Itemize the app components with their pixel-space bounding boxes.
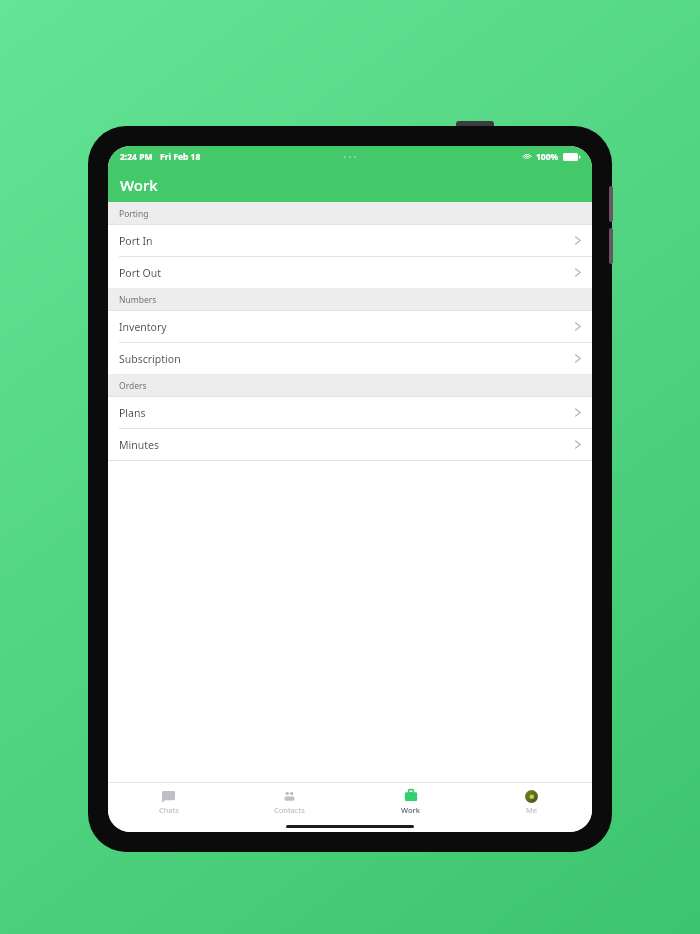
staticText: Contacts	[274, 805, 305, 815]
button[interactable]: Me profile	[471, 783, 592, 821]
staticText: Chats	[159, 805, 179, 815]
other: Contacts	[283, 790, 296, 803]
other: Me profile	[525, 790, 538, 803]
staticText: Me	[526, 805, 538, 815]
staticText: Work	[401, 805, 420, 815]
staticText: Numbers	[119, 294, 157, 306]
staticText: Fri Feb 18	[160, 151, 201, 163]
button[interactable]: Plans	[108, 397, 592, 428]
staticText: Orders	[119, 380, 147, 392]
staticText: Subscription	[119, 352, 181, 366]
button[interactable]: Chats	[108, 783, 229, 821]
other: Work	[404, 789, 418, 803]
staticText: Port In	[119, 234, 153, 248]
staticText: 2:24 PM	[120, 151, 153, 163]
other: Chats	[162, 790, 175, 803]
staticText: 100%	[536, 151, 559, 163]
button[interactable]: Port In	[108, 225, 592, 256]
button[interactable]: Subscription	[108, 343, 592, 374]
staticText: Inventory	[119, 320, 167, 334]
button[interactable]: Work	[350, 783, 471, 821]
button[interactable]: Inventory	[108, 311, 592, 342]
staticText: Minutes	[119, 438, 159, 452]
button[interactable]: Minutes	[108, 429, 592, 460]
button[interactable]: Port Out	[108, 257, 592, 288]
staticText: Port Out	[119, 266, 162, 280]
staticText: Plans	[119, 406, 146, 420]
staticText: Porting	[119, 208, 149, 220]
staticText: Work	[120, 175, 158, 195]
button[interactable]: Contacts	[229, 783, 350, 821]
